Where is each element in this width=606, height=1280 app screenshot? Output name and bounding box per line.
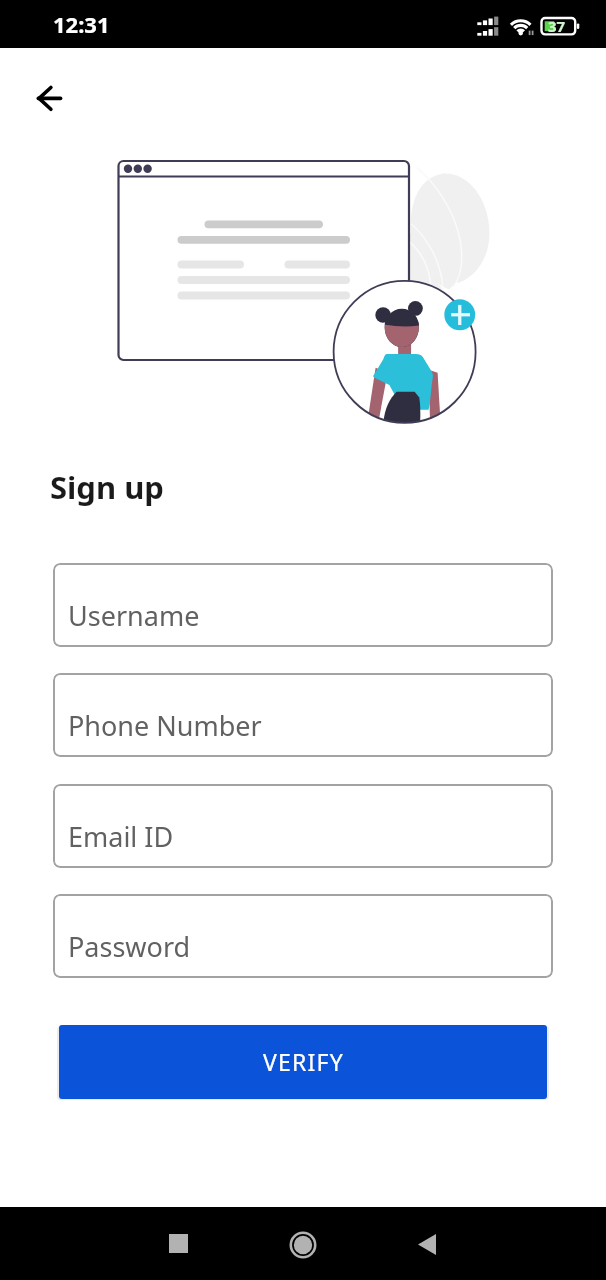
button[interactable]: Recent apps	[148, 1213, 208, 1273]
button[interactable]: Back	[397, 1214, 457, 1274]
button[interactable]: Back	[16, 76, 82, 122]
button[interactable]: VERIFY	[59, 1025, 547, 1099]
staticText: Email ID	[68, 818, 174, 855]
staticText: Sign up	[50, 466, 164, 508]
button[interactable]: Email ID	[53, 784, 553, 868]
button[interactable]: Username	[53, 563, 553, 647]
staticText: Password	[68, 928, 191, 965]
staticText: 12:31	[53, 9, 110, 39]
button[interactable]: Password	[53, 894, 553, 978]
staticText: Phone Number	[68, 707, 262, 744]
button[interactable]: Home	[273, 1215, 333, 1275]
staticText: 37	[548, 16, 566, 36]
button[interactable]: Phone Number	[53, 673, 553, 757]
staticText: VERIFY	[263, 1046, 344, 1077]
staticText: Username	[68, 597, 200, 634]
